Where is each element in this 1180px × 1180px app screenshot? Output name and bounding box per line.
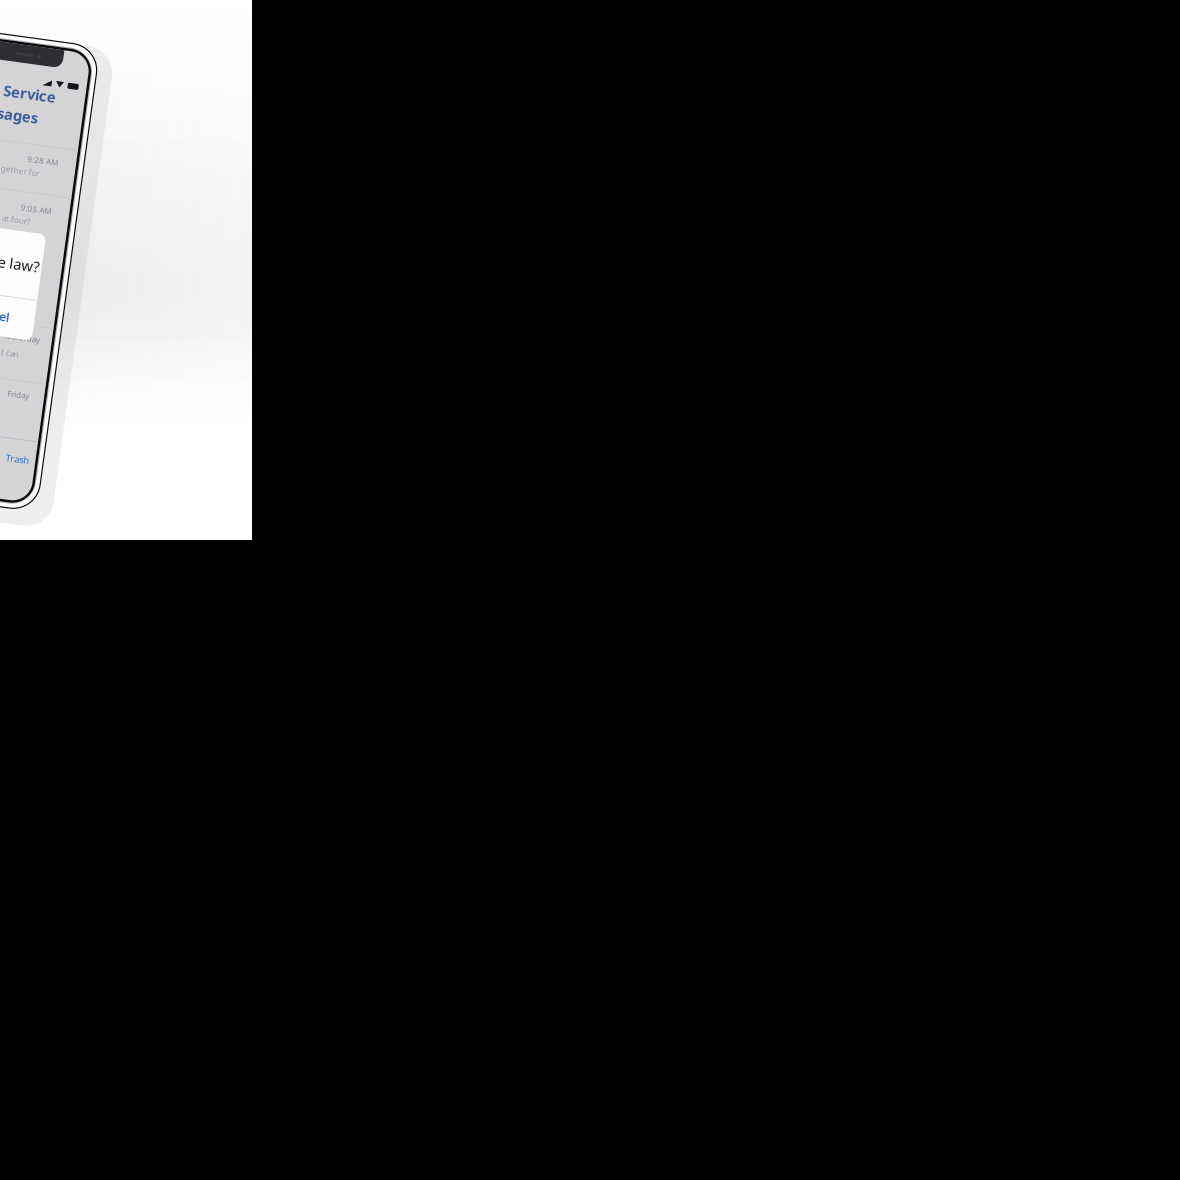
- button[interactable]: Trash: [31, 448, 55, 461]
- staticText: Cancel: [0, 307, 15, 323]
- staticText: Messages: [0, 104, 17, 124]
- staticText: Can we meet at four?: [0, 212, 23, 223]
- staticText: Let's get together for: [0, 163, 26, 174]
- staticText: Text Service: [0, 81, 32, 101]
- staticText: 9:28 AM: [12, 150, 43, 161]
- button[interactable]: Cancel: [0, 295, 41, 335]
- staticText: Yesterday: [12, 328, 49, 339]
- staticText: Is it the law?: [0, 252, 38, 271]
- staticText: Trash: [31, 448, 55, 461]
- staticText: Dinner tonight — I can: [0, 345, 30, 356]
- staticText: Friday: [24, 385, 46, 396]
- staticText: 9:05 AM: [12, 199, 43, 210]
